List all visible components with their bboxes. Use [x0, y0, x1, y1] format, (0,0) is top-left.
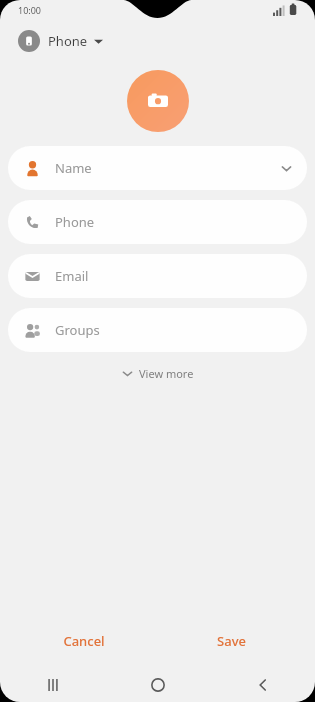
- button[interactable]: Groups: [8, 308, 307, 352]
- button[interactable]: Home: [105, 668, 210, 702]
- button[interactable]: Cancel: [10, 624, 157, 658]
- staticText: Email: [55, 267, 89, 285]
- staticText: View more: [139, 366, 194, 381]
- staticText: Name: [55, 159, 92, 177]
- staticText: Cancel: [63, 632, 105, 650]
- button[interactable]: Phone: [8, 200, 307, 244]
- button[interactable]: Recents: [0, 668, 105, 702]
- staticText: Phone: [48, 32, 88, 50]
- button[interactable]: Add photo: [127, 70, 189, 132]
- button[interactable]: Email: [8, 254, 307, 298]
- button[interactable]: Name: [8, 146, 307, 190]
- button[interactable]: Phone: [14, 26, 107, 56]
- staticText: Phone: [55, 213, 95, 231]
- button[interactable]: Save: [157, 624, 305, 658]
- button[interactable]: Back: [210, 668, 315, 702]
- staticText: 10:00: [18, 4, 42, 16]
- button[interactable]: View more: [112, 360, 204, 387]
- staticText: Groups: [55, 321, 100, 339]
- staticText: Save: [217, 632, 246, 650]
